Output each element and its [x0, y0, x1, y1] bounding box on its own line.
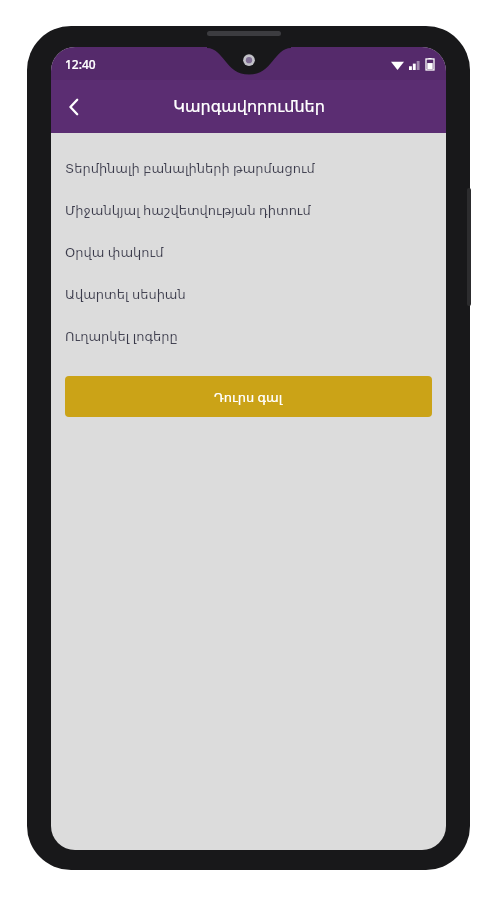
button[interactable]: Օրվա փակում: [51, 231, 446, 273]
staticText: Օրվա փակում: [65, 243, 164, 261]
staticText: 12:40: [65, 56, 96, 72]
staticText: Տերմինալի բանալիների թարմացում: [65, 159, 315, 177]
button[interactable]: Տերմինալի բանալիների թարմացում: [51, 147, 446, 189]
staticText: Ուղարկել լոգերը: [65, 327, 178, 345]
staticText: Ավարտել սեսիան: [65, 285, 186, 303]
staticText: Դուրս գալ: [214, 388, 283, 406]
button[interactable]: Միջանկյալ հաշվետվության դիտում: [51, 189, 446, 231]
button[interactable]: Դուրս գալ: [65, 376, 432, 417]
button[interactable]: Ուղարկել լոգերը: [51, 315, 446, 357]
button[interactable]: Back: [51, 84, 97, 130]
staticText: Միջանկյալ հաշվետվության դիտում: [65, 201, 311, 219]
button[interactable]: Ավարտել սեսիան: [51, 273, 446, 315]
staticText: Կարգավորումներ: [173, 97, 325, 116]
